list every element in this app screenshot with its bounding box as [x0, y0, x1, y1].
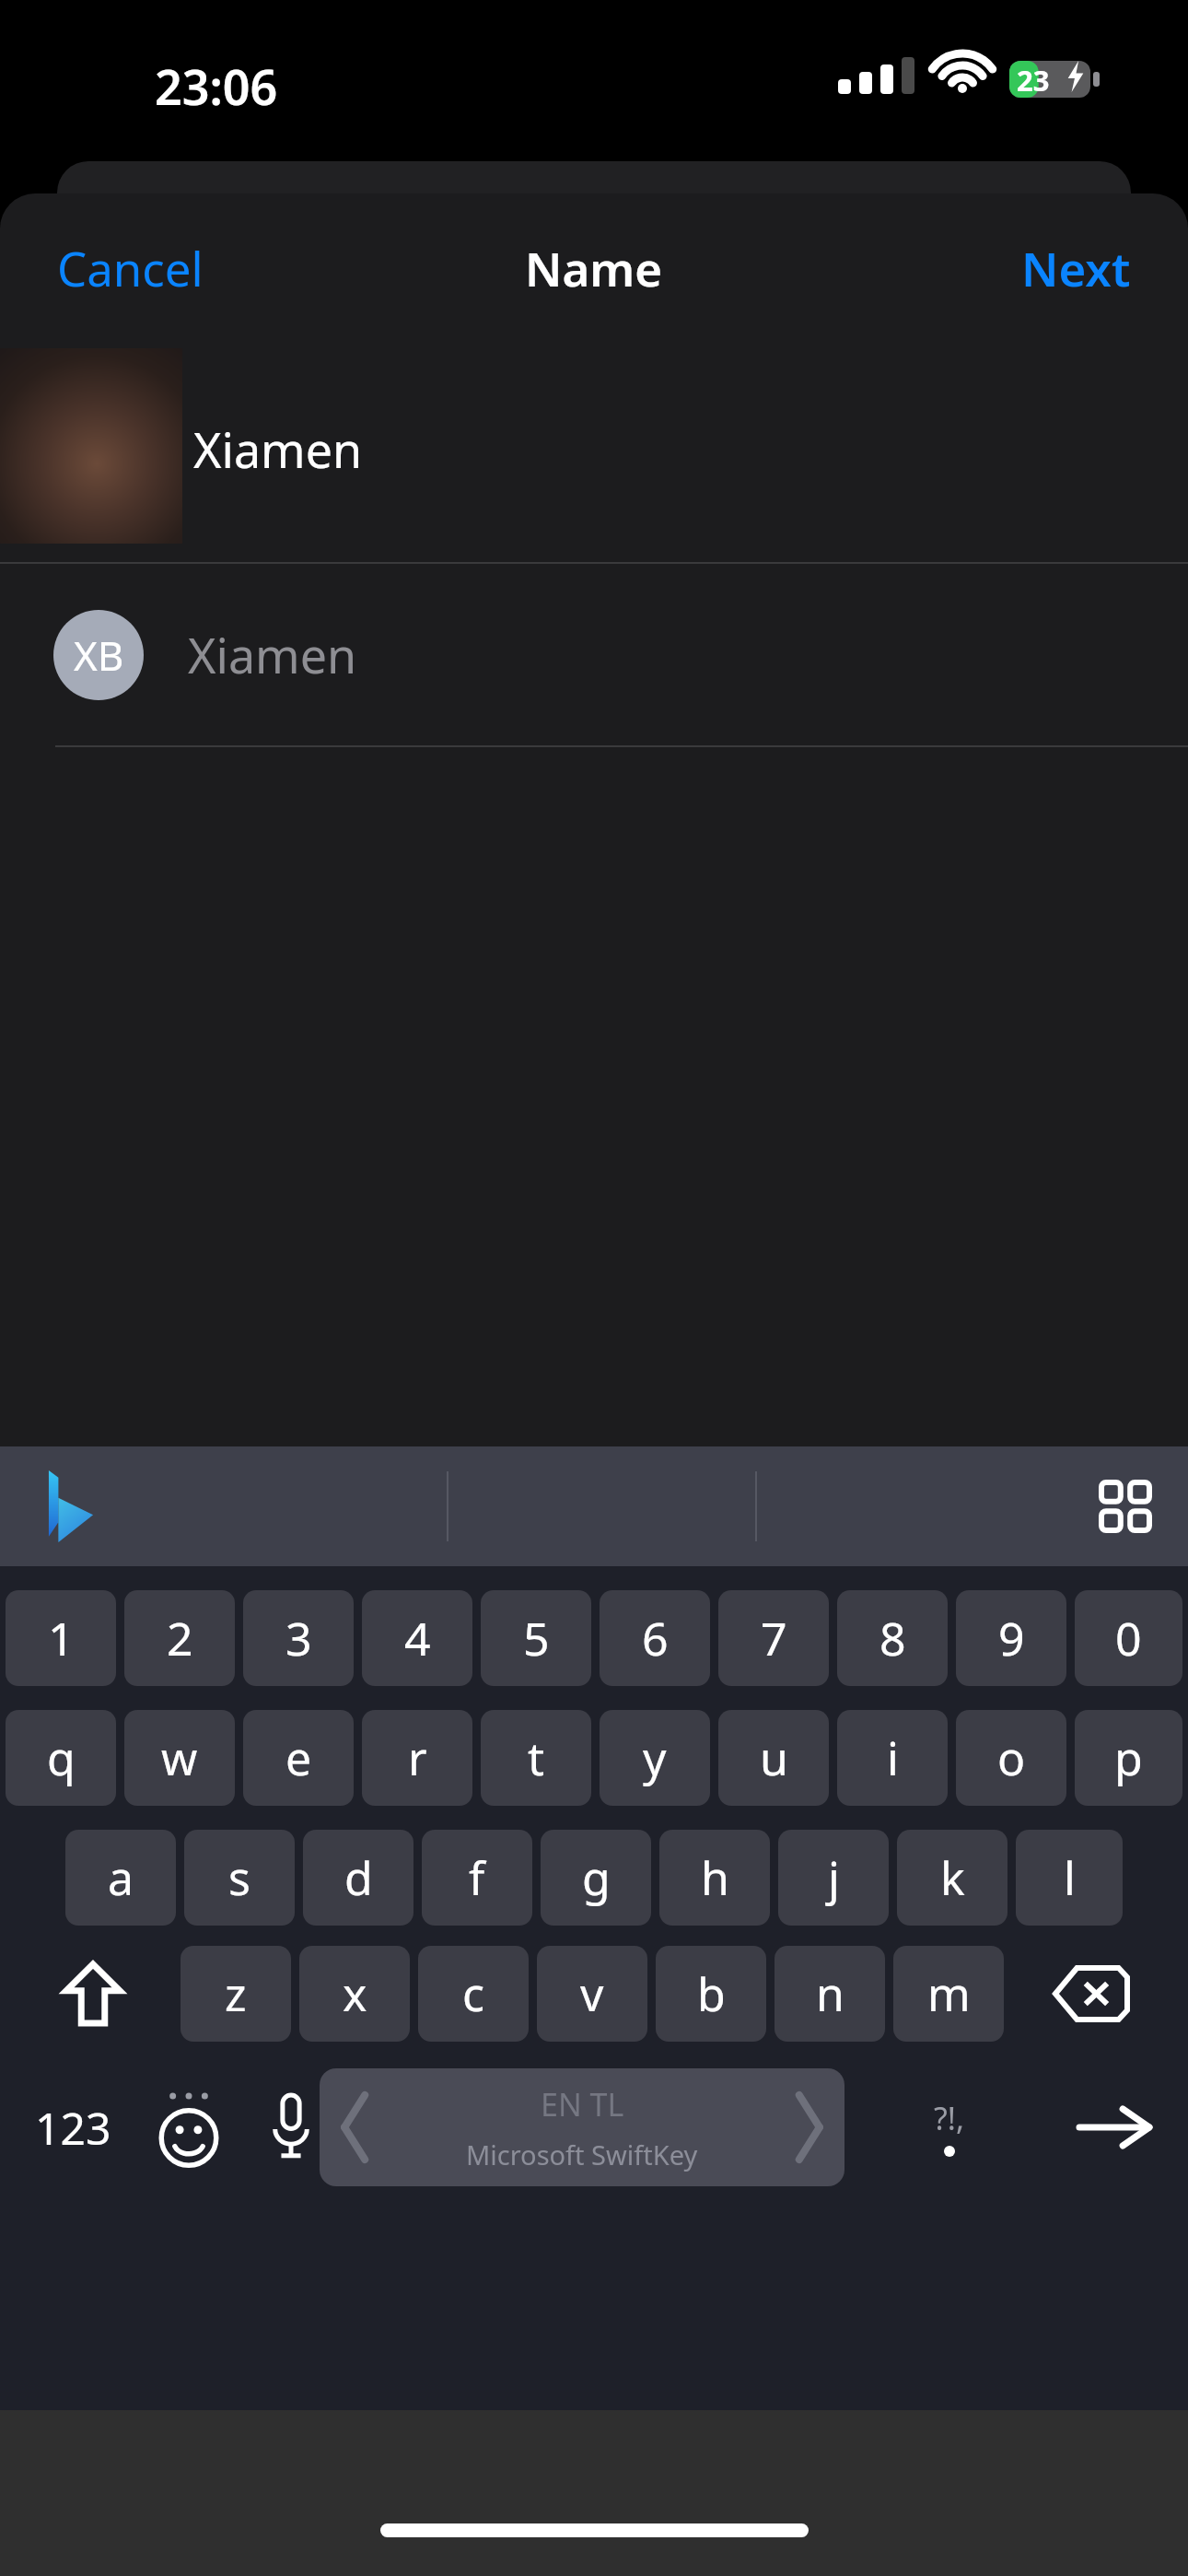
staticText: p — [1114, 1727, 1143, 1789]
staticText: q — [47, 1727, 76, 1789]
button[interactable]: e — [243, 1710, 354, 1806]
button[interactable]: b — [656, 1946, 766, 2042]
staticText: Xiamen — [193, 416, 363, 482]
staticText: i — [887, 1727, 899, 1789]
staticText: XB — [74, 627, 124, 683]
button[interactable]: g — [541, 1830, 651, 1926]
button[interactable]: n — [775, 1946, 885, 2042]
button[interactable]: 7 — [718, 1590, 829, 1686]
button[interactable]: r — [362, 1710, 472, 1806]
staticText: s — [228, 1846, 250, 1909]
staticText: d — [344, 1846, 373, 1909]
button[interactable]: s — [184, 1830, 295, 1926]
staticText: e — [285, 1727, 312, 1789]
staticText: ?!, — [934, 2097, 965, 2139]
button[interactable]: Bing search — [28, 1456, 111, 1557]
button[interactable]: k — [897, 1830, 1007, 1926]
button[interactable]: 5 — [481, 1590, 591, 1686]
staticText: z — [225, 1962, 247, 2025]
staticText: 1 — [48, 1607, 75, 1669]
staticText: 9 — [998, 1607, 1025, 1669]
staticText: Next — [1021, 236, 1131, 299]
staticText: a — [108, 1846, 134, 1909]
button[interactable]: Shift — [6, 1946, 181, 2042]
staticText: n — [816, 1962, 844, 2025]
button[interactable]: 4 — [362, 1590, 472, 1686]
staticText: 123 — [35, 2098, 111, 2158]
button[interactable]: v — [537, 1946, 647, 2042]
staticText: t — [528, 1727, 545, 1789]
staticText: 3 — [285, 1607, 312, 1669]
staticText: k — [940, 1846, 965, 1909]
button[interactable]: 8 — [837, 1590, 948, 1686]
button[interactable]: d — [303, 1830, 413, 1926]
button[interactable]: Backspace — [1004, 1946, 1179, 2042]
staticText: 4 — [404, 1607, 431, 1669]
staticText: b — [697, 1962, 726, 2025]
staticText: o — [997, 1727, 1026, 1789]
staticText: 7 — [761, 1607, 787, 1669]
button[interactable]: z — [181, 1946, 291, 2042]
staticText: Name — [525, 236, 663, 299]
staticText: 2 — [167, 1607, 193, 1669]
button[interactable]: p — [1075, 1710, 1182, 1806]
staticText: c — [462, 1962, 484, 2025]
button[interactable]: i — [837, 1710, 948, 1806]
staticText: EN TL — [541, 2083, 624, 2125]
button[interactable]: 0 — [1075, 1590, 1182, 1686]
staticText: v — [580, 1962, 604, 2025]
staticText: 0 — [1115, 1607, 1142, 1669]
button[interactable]: XB — [0, 564, 1188, 745]
staticText: f — [469, 1846, 485, 1909]
staticText: l — [1064, 1846, 1076, 1909]
staticText: 23 — [1017, 61, 1050, 100]
button[interactable]: 3 — [243, 1590, 354, 1686]
button[interactable]: m — [893, 1946, 1004, 2042]
button[interactable]: f — [422, 1830, 532, 1926]
button[interactable]: Voice input — [256, 2082, 326, 2172]
button[interactable]: u — [718, 1710, 829, 1806]
staticText: y — [643, 1727, 667, 1789]
staticText: Microsoft SwiftKey — [466, 2137, 698, 2172]
staticText: r — [408, 1727, 427, 1789]
button[interactable]: 123 — [24, 2087, 122, 2169]
staticText: w — [161, 1727, 198, 1789]
staticText: j — [828, 1846, 840, 1909]
button[interactable]: Keyboard menu — [1083, 1464, 1168, 1549]
button[interactable]: j — [778, 1830, 889, 1926]
button[interactable]: Punctuation — [921, 2084, 978, 2171]
button[interactable]: l — [1016, 1830, 1123, 1926]
button[interactable]: x — [299, 1946, 410, 2042]
button[interactable]: c — [418, 1946, 529, 2042]
button[interactable]: a — [65, 1830, 176, 1926]
button[interactable]: EN TL — [320, 2068, 844, 2186]
button[interactable]: o — [956, 1710, 1066, 1806]
staticText: m — [927, 1962, 971, 2025]
button[interactable]: 9 — [956, 1590, 1066, 1686]
staticText: x — [343, 1962, 367, 2025]
button[interactable]: h — [659, 1830, 770, 1926]
staticText: g — [582, 1846, 611, 1909]
staticText: Cancel — [57, 236, 204, 299]
button[interactable]: q — [6, 1710, 116, 1806]
button[interactable]: Cancel — [0, 208, 261, 327]
staticText: 5 — [523, 1607, 550, 1669]
staticText: 23:06 — [155, 53, 278, 119]
staticText: h — [701, 1846, 729, 1909]
button[interactable]: y — [600, 1710, 710, 1806]
button[interactable]: w — [124, 1710, 235, 1806]
button[interactable]: Emoji — [147, 2078, 230, 2176]
staticText: 8 — [879, 1607, 906, 1669]
button[interactable]: 6 — [600, 1590, 710, 1686]
button[interactable]: 2 — [124, 1590, 235, 1686]
staticText: 6 — [642, 1607, 669, 1669]
staticText: u — [760, 1727, 788, 1789]
button[interactable]: t — [481, 1710, 591, 1806]
button[interactable]: Enter — [1065, 2090, 1164, 2165]
button[interactable]: 1 — [6, 1590, 116, 1686]
button[interactable]: Xiamen — [0, 341, 1188, 562]
staticText: Xiamen — [188, 622, 357, 687]
button[interactable]: Next — [964, 208, 1188, 327]
